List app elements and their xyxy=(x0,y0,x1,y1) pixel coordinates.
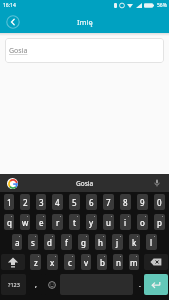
button[interactable] xyxy=(45,274,58,295)
button[interactable]: g xyxy=(78,234,89,250)
staticText: p xyxy=(157,217,162,228)
staticText: c xyxy=(68,257,72,268)
button[interactable]: Gosia xyxy=(5,38,164,63)
button[interactable]: v xyxy=(81,254,91,270)
button[interactable]: 7 xyxy=(103,194,114,210)
button[interactable]: . xyxy=(135,274,144,295)
staticText: x xyxy=(50,257,55,268)
button[interactable]: Gosia xyxy=(76,179,94,188)
button[interactable]: b xyxy=(97,254,107,270)
staticText: 2 xyxy=(23,197,28,208)
staticText: w xyxy=(22,217,29,228)
staticText: 1 xyxy=(7,197,12,208)
staticText: 7 xyxy=(106,197,111,208)
button[interactable]: y xyxy=(86,214,97,230)
button[interactable]: 4 xyxy=(52,194,63,210)
button[interactable]: w xyxy=(20,214,30,230)
staticText: Imię xyxy=(77,17,93,27)
button[interactable]: ?123 xyxy=(1,274,26,295)
button[interactable]: u xyxy=(103,214,114,230)
button[interactable] xyxy=(144,274,168,295)
button[interactable]: p xyxy=(154,214,165,230)
button[interactable] xyxy=(7,178,18,189)
staticText: z xyxy=(34,257,38,268)
staticText: 3 xyxy=(39,197,44,208)
button[interactable] xyxy=(151,177,163,189)
staticText: ?123 xyxy=(8,281,20,288)
staticText: 5 xyxy=(72,197,77,208)
staticText: f xyxy=(65,237,68,248)
staticText: o xyxy=(140,217,145,228)
button[interactable]: c xyxy=(64,254,75,270)
button[interactable]: a xyxy=(12,234,22,250)
button[interactable]: z xyxy=(30,254,41,270)
staticText: y xyxy=(89,217,94,228)
staticText: 6 xyxy=(89,197,94,208)
button[interactable]: 3 xyxy=(36,194,46,210)
button[interactable]: h xyxy=(95,234,106,250)
staticText: Gosia xyxy=(9,46,28,56)
staticText: g xyxy=(81,237,86,248)
staticText: u xyxy=(106,217,111,228)
staticText: . xyxy=(139,280,141,290)
button[interactable]: m xyxy=(129,254,139,270)
button[interactable]: 2 xyxy=(20,194,30,210)
button[interactable]: f xyxy=(61,234,72,250)
staticText: 0 xyxy=(157,197,162,208)
staticText: i xyxy=(124,217,127,228)
staticText: n xyxy=(116,257,121,268)
button[interactable]: t xyxy=(69,214,80,230)
button[interactable]: i xyxy=(120,214,131,230)
staticText: 8 xyxy=(123,197,128,208)
button[interactable]: o xyxy=(137,214,148,230)
staticText: t xyxy=(73,217,76,228)
button[interactable]: k xyxy=(129,234,140,250)
button[interactable]: e xyxy=(36,214,46,230)
button[interactable]: j xyxy=(112,234,123,250)
button[interactable]: s xyxy=(28,234,38,250)
button[interactable]: , xyxy=(29,274,42,295)
staticText: k xyxy=(132,237,137,248)
button[interactable]: r xyxy=(52,214,63,230)
button[interactable]: 8 xyxy=(120,194,131,210)
staticText: 4 xyxy=(55,197,60,208)
button[interactable] xyxy=(1,254,25,270)
button[interactable]: 5 xyxy=(69,194,80,210)
staticText: 56% xyxy=(157,2,167,9)
button[interactable]: 1 xyxy=(4,194,14,210)
staticText: 9 xyxy=(140,197,145,208)
staticText: l xyxy=(150,237,153,248)
button[interactable]: l xyxy=(146,234,157,250)
button[interactable]: 6 xyxy=(86,194,97,210)
staticText: a xyxy=(15,237,20,248)
staticText: , xyxy=(35,280,37,290)
button[interactable]: q xyxy=(4,214,14,230)
staticText: m xyxy=(130,257,138,268)
staticText: e xyxy=(39,217,44,228)
button[interactable]: d xyxy=(44,234,55,250)
button[interactable] xyxy=(6,15,20,29)
button[interactable]: 0 xyxy=(154,194,165,210)
staticText: v xyxy=(84,257,89,268)
staticText: r xyxy=(56,217,60,228)
button[interactable]: 9 xyxy=(137,194,148,210)
button[interactable]: n xyxy=(113,254,123,270)
staticText: 16:14 xyxy=(3,2,16,9)
staticText: q xyxy=(7,217,12,228)
staticText: h xyxy=(98,237,103,248)
staticText: j xyxy=(116,237,119,248)
staticText: b xyxy=(100,257,105,268)
staticText: d xyxy=(47,237,52,248)
button[interactable] xyxy=(144,254,168,270)
button[interactable]: x xyxy=(47,254,58,270)
staticText: s xyxy=(31,237,35,248)
